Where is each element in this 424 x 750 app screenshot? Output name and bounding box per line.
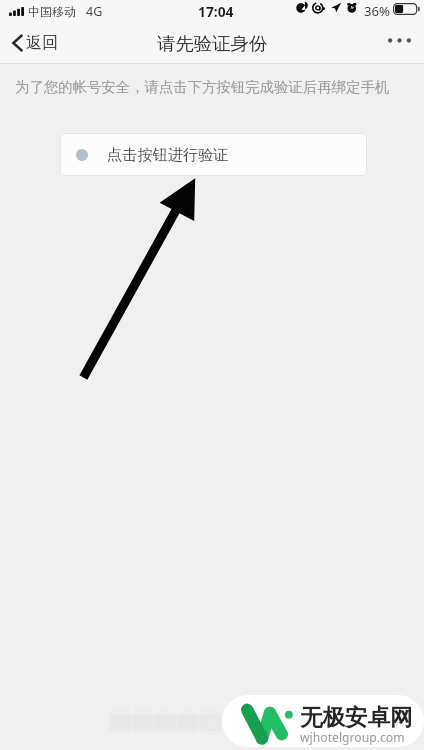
button[interactable]: More options xyxy=(377,24,424,57)
staticText: 无极安卓网 xyxy=(300,703,413,731)
staticText: wjhotelgroup.com xyxy=(300,729,405,746)
staticText: 点击按钮进行验证 xyxy=(107,145,229,164)
staticText: 4G xyxy=(86,3,103,20)
staticText: 为了您的帐号安全，请点击下方按钮完成验证后再绑定手机 xyxy=(15,78,390,96)
staticText: 中国移动 xyxy=(28,4,76,19)
button[interactable]: 返回 xyxy=(0,25,70,61)
button[interactable]: 点击按钮进行验证 xyxy=(60,133,367,176)
staticText: 返回 xyxy=(26,33,58,53)
staticText: 请先验证身份 xyxy=(157,32,268,55)
staticText: 36% xyxy=(364,2,391,20)
staticText: 17:04 xyxy=(198,2,234,21)
